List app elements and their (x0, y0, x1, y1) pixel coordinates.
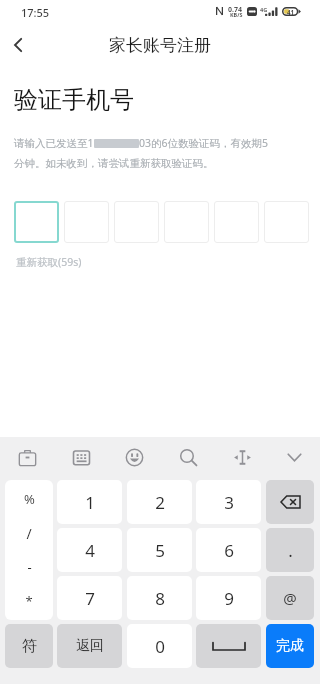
staticText: 完成 (276, 637, 304, 655)
button[interactable]: 重新获取(59s) (16, 255, 82, 269)
staticText: 请输入已发送至1 (14, 136, 94, 150)
staticText: 家长账号注册 (109, 35, 211, 56)
button[interactable]: @ (266, 576, 314, 620)
button[interactable]: % (5, 480, 53, 620)
staticText: 0 (155, 635, 165, 658)
staticText: 分钟。如未收到，请尝试重新获取验证码。 (14, 157, 214, 170)
staticText: - (27, 558, 32, 576)
staticText: 3 (224, 491, 234, 514)
button[interactable]: 返回 (57, 624, 122, 668)
staticText: 03的6位数验证码，有效期5 (139, 136, 269, 150)
button[interactable] (164, 201, 209, 243)
staticText: KB/S (230, 11, 243, 18)
button[interactable]: 4 (57, 528, 122, 572)
button[interactable]: . (266, 528, 314, 572)
button[interactable]: 7 (57, 576, 122, 620)
button[interactable]: 5 (127, 528, 192, 572)
button[interactable]: Backspace (266, 480, 314, 524)
staticText: @ (283, 588, 297, 608)
button[interactable]: 完成 (266, 624, 314, 668)
button[interactable]: 1 (57, 480, 122, 524)
button[interactable]: Back (0, 26, 40, 64)
button[interactable] (14, 201, 59, 243)
button[interactable]: Switch keyboard (63, 437, 99, 480)
button[interactable] (264, 201, 309, 243)
button[interactable] (214, 201, 259, 243)
staticText: . (288, 539, 293, 562)
button[interactable]: Search (170, 437, 206, 480)
staticText: 验证手机号 (14, 85, 134, 115)
staticText: 返回 (76, 637, 104, 655)
button[interactable]: 9 (196, 576, 261, 620)
staticText: 1 (85, 491, 95, 514)
staticText: 41 (287, 8, 295, 16)
staticText: 17:55 (21, 5, 50, 20)
button[interactable]: 符 (5, 624, 53, 668)
staticText: 6 (224, 539, 234, 562)
staticText: 4G (260, 6, 268, 14)
button[interactable]: Emoji (116, 437, 152, 480)
button[interactable]: 6 (196, 528, 261, 572)
staticText: 2 (155, 491, 165, 514)
button[interactable]: Space (196, 624, 261, 668)
staticText: % (24, 490, 35, 508)
staticText: * (25, 592, 33, 610)
staticText: / (26, 524, 32, 543)
button[interactable]: Move cursor (224, 437, 260, 480)
button[interactable]: 0 (127, 624, 192, 668)
staticText: 符 (22, 637, 37, 656)
button[interactable]: 2 (127, 480, 192, 524)
button[interactable] (64, 201, 109, 243)
staticText: 7 (85, 587, 95, 610)
button[interactable]: 8 (127, 576, 192, 620)
button[interactable]: Hide keyboard (276, 437, 312, 480)
staticText: 4 (85, 539, 95, 562)
staticText: 0.74 (228, 5, 242, 15)
staticText: 5 (155, 539, 165, 562)
button[interactable] (114, 201, 159, 243)
button[interactable]: 3 (196, 480, 261, 524)
button[interactable]: Clipboard (9, 437, 45, 480)
staticText: 8 (155, 587, 165, 610)
staticText: 9 (224, 587, 234, 610)
